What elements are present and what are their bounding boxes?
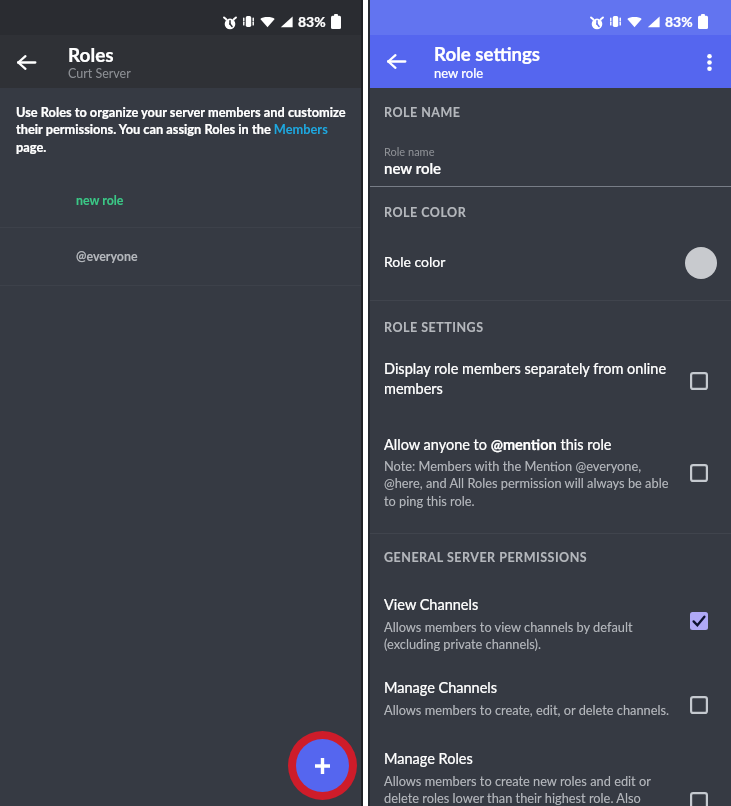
- staticText: Curt Server: [68, 66, 131, 81]
- staticText: Allow anyone to @mention this role: [384, 436, 612, 453]
- staticText: GENERAL SERVER PERMISSIONS: [384, 550, 588, 565]
- staticText: Role color: [384, 253, 446, 270]
- button[interactable]: Manage Roles: [370, 750, 731, 806]
- staticText: Roles: [68, 43, 114, 66]
- button[interactable]: Disabled: [684, 458, 714, 488]
- staticText: View Channels: [384, 596, 479, 613]
- staticText: Display role members separately from onl…: [384, 360, 673, 397]
- staticText: Allows members to view channels by defau…: [384, 619, 673, 652]
- staticText: new role: [434, 65, 484, 81]
- staticText: @everyone: [76, 249, 138, 264]
- staticText: Manage Roles: [384, 750, 473, 767]
- button[interactable]: Disabled: [684, 786, 714, 806]
- staticText: Allows members to create, edit, or delet…: [384, 702, 670, 717]
- button[interactable]: @everyone: [0, 228, 361, 285]
- staticText: new role: [384, 159, 442, 177]
- button[interactable]: new role: [0, 172, 361, 229]
- button[interactable]: Enabled: [684, 606, 714, 636]
- button[interactable]: Display role members separately from onl…: [370, 360, 731, 397]
- button[interactable]: Back: [368, 35, 424, 88]
- staticText: ROLE SETTINGS: [384, 320, 484, 335]
- staticText: ROLE COLOR: [384, 205, 467, 220]
- button[interactable]: Allow anyone to @mention this role: [370, 436, 731, 509]
- button[interactable]: View Channels: [370, 596, 731, 652]
- button[interactable]: Role color: [370, 234, 731, 288]
- staticText: Manage Channels: [384, 679, 498, 696]
- staticText: Role settings: [434, 43, 541, 65]
- staticText: Use Roles to organize your server member…: [16, 104, 359, 155]
- staticText: 83%: [298, 13, 326, 30]
- button[interactable]: Back: [0, 36, 52, 88]
- button[interactable]: Disabled: [684, 366, 714, 396]
- button[interactable]: Manage Channels: [370, 679, 731, 717]
- button[interactable]: More options: [685, 38, 731, 86]
- button[interactable]: Role name: [370, 141, 731, 199]
- staticText: new role: [76, 193, 124, 208]
- staticText: Note: Members with the Mention @everyone…: [384, 458, 673, 509]
- staticText: Allows members to create new roles and e…: [384, 773, 673, 806]
- button[interactable]: Disabled: [684, 690, 714, 720]
- staticText: ROLE NAME: [384, 105, 461, 120]
- staticText: 83%: [665, 13, 693, 30]
- staticText: Role name: [384, 145, 435, 158]
- button[interactable]: Create role: [296, 739, 349, 792]
